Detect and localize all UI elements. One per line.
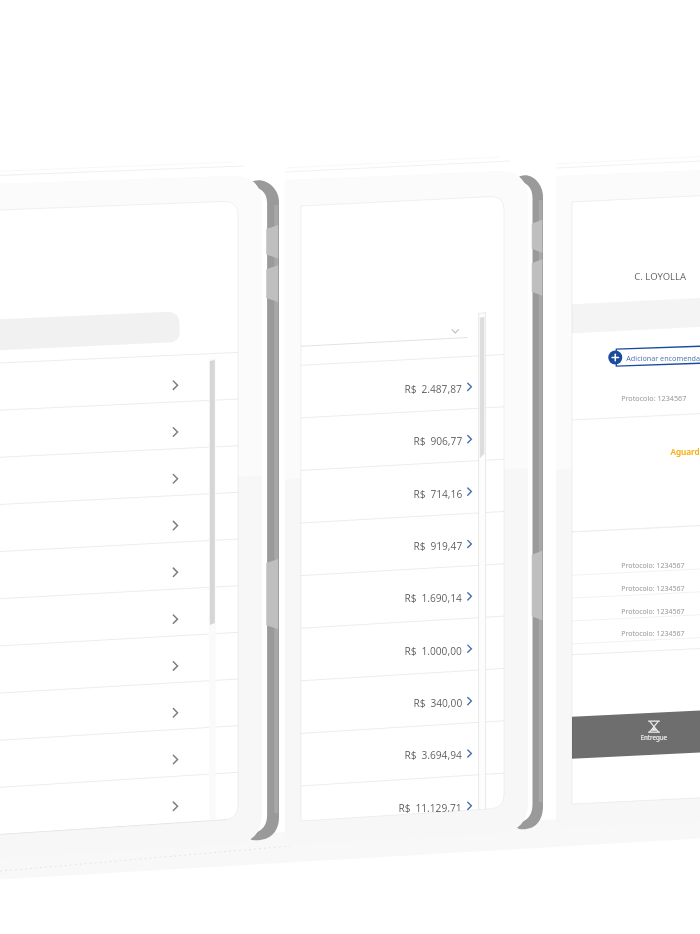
button[interactable]: Three tablets showing app screens — [0, 0, 700, 934]
